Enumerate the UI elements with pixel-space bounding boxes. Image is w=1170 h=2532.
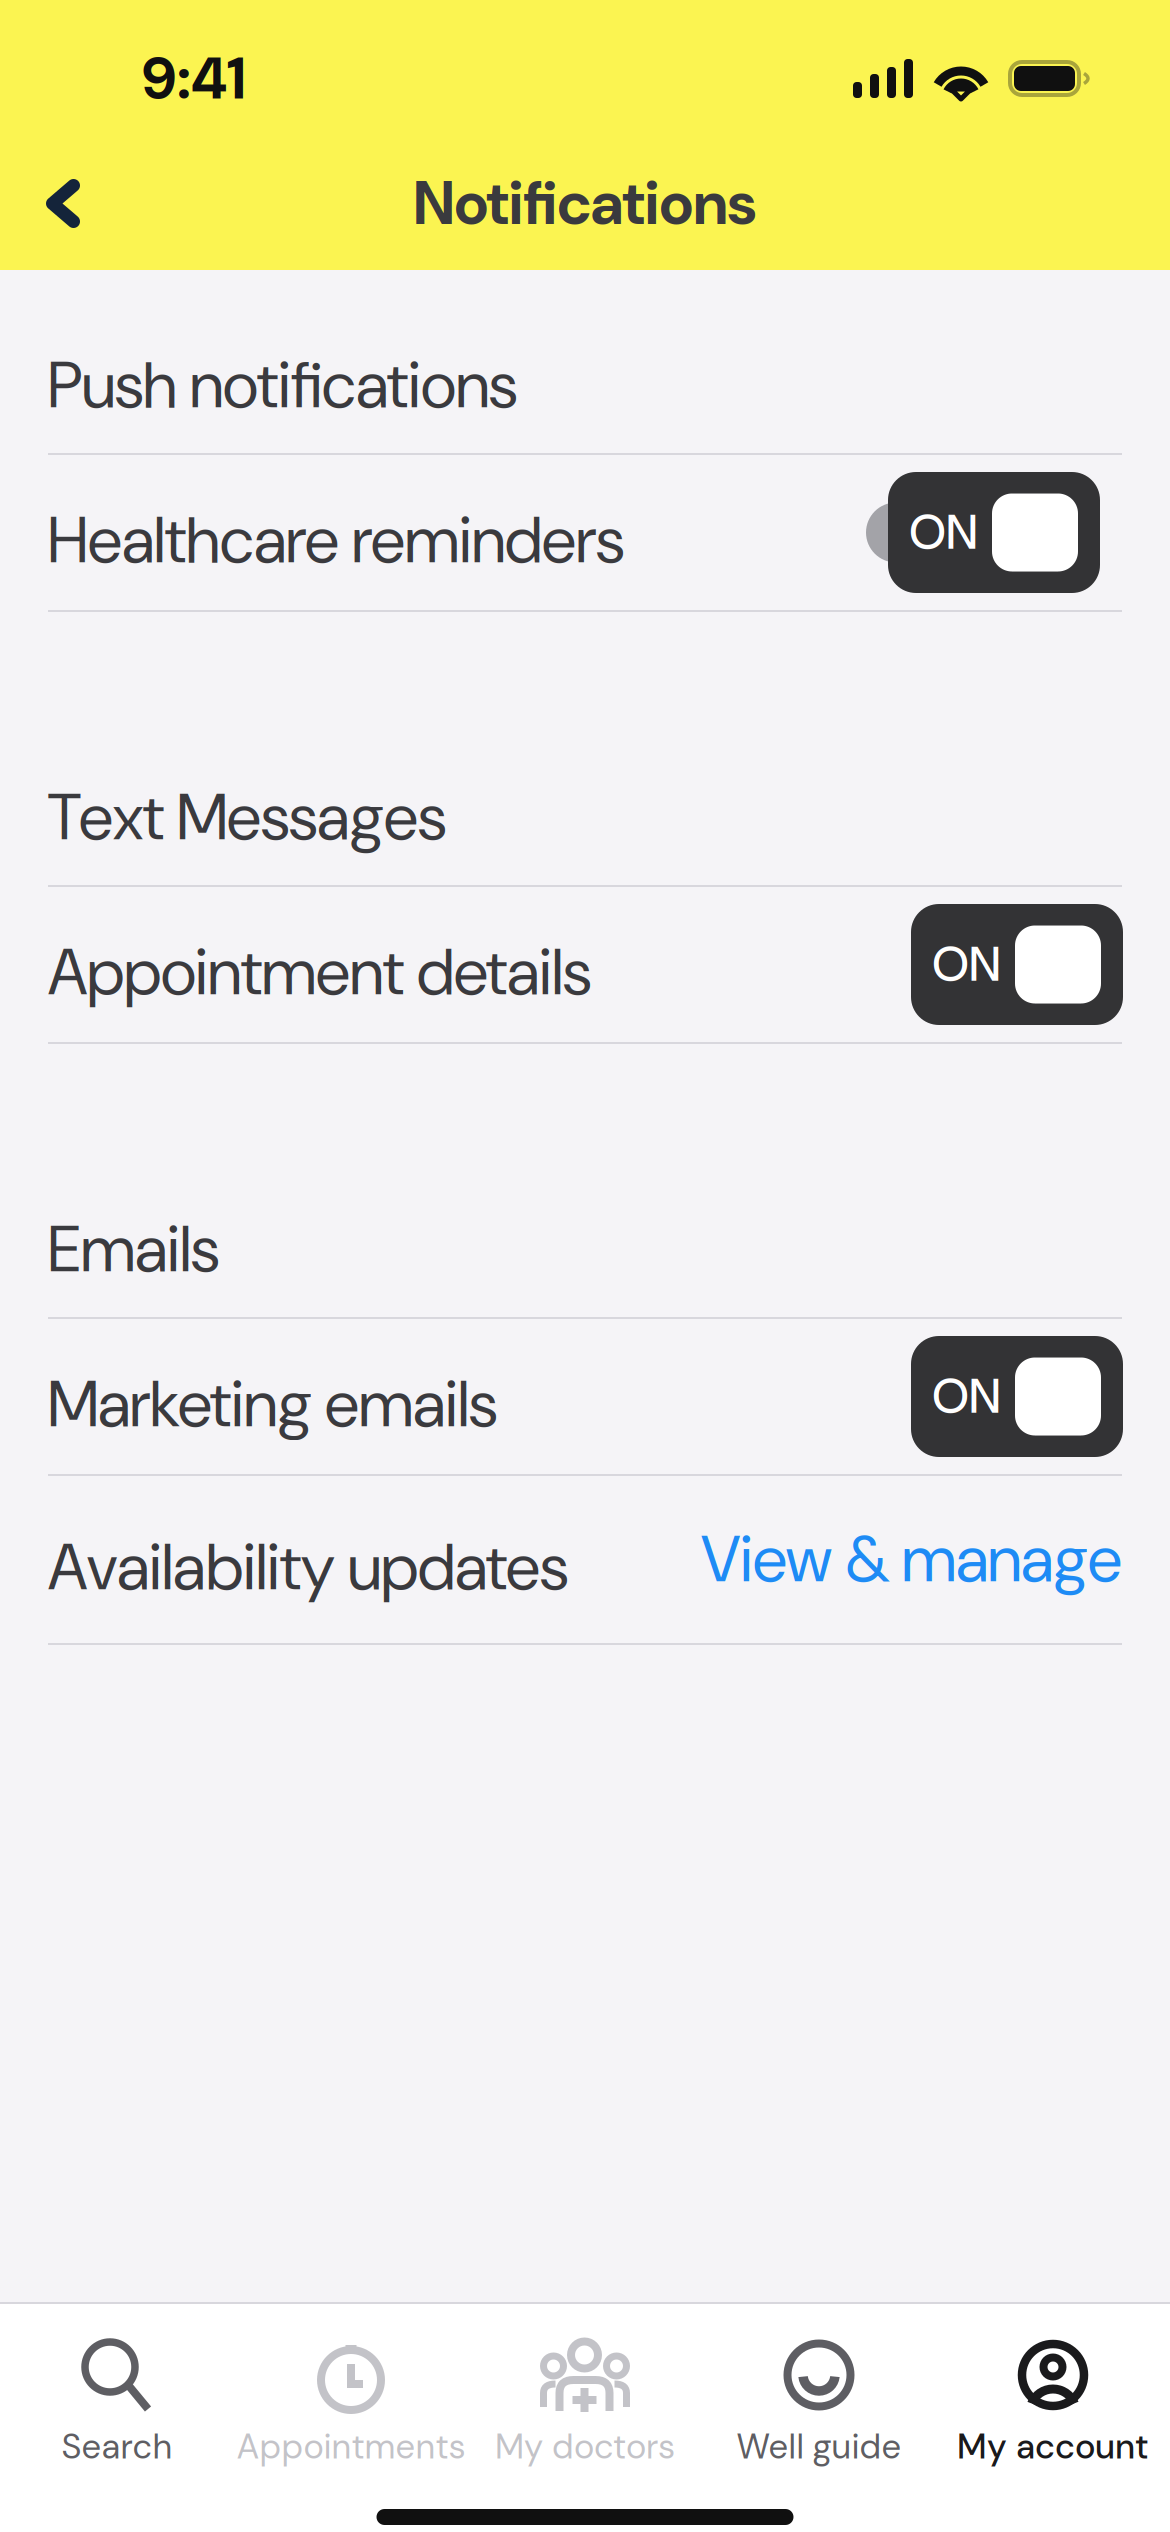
button[interactable]: Marketing emails <box>48 1319 1122 1474</box>
button[interactable]: Appointments <box>234 2304 468 2474</box>
staticText: Appointment details <box>48 931 591 1014</box>
staticText: Marketing emails <box>48 1363 497 1446</box>
staticText: Availability updates <box>48 1526 568 1609</box>
staticText: Notifications <box>413 164 756 242</box>
staticText: ON <box>932 1365 1001 1428</box>
button[interactable]: Well guide <box>702 2304 936 2474</box>
staticText: Appointments <box>236 2424 465 2469</box>
staticText: ON <box>909 501 978 564</box>
staticText: Push notifications <box>48 344 517 427</box>
staticText: Search <box>61 2424 172 2469</box>
button[interactable]: Back <box>20 155 106 251</box>
staticText: My doctors <box>495 2424 675 2469</box>
button[interactable]: Appointment details <box>48 887 1122 1042</box>
staticText: Well guide <box>736 2424 901 2469</box>
staticText: 9:41 <box>142 40 246 117</box>
staticText: My account <box>957 2424 1149 2469</box>
staticText: Text Messages <box>48 776 446 859</box>
button[interactable]: Search <box>0 2304 234 2474</box>
button[interactable]: Healthcare reminders <box>48 455 1122 610</box>
staticText: View & manage <box>701 1518 1122 1601</box>
staticText: Healthcare reminders <box>48 499 624 582</box>
button[interactable]: My account <box>936 2304 1170 2474</box>
button[interactable]: Availability updates <box>48 1476 1122 1643</box>
button[interactable]: My doctors <box>468 2304 702 2474</box>
staticText: ON <box>932 933 1001 996</box>
staticText: Emails <box>48 1208 219 1291</box>
